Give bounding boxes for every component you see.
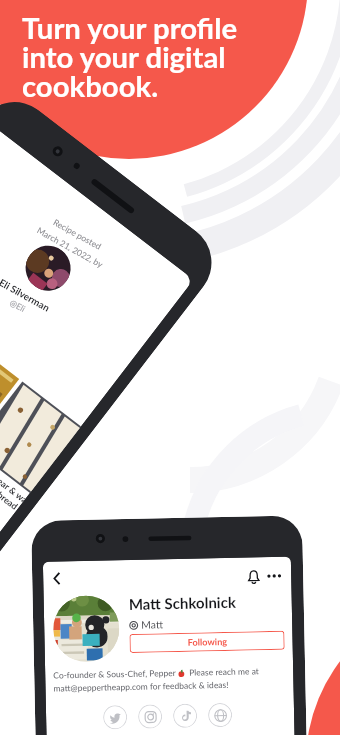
staticText: Co-founder & Sous-Chef, Pepper (53, 668, 178, 681)
staticText: Matt Schkolnick (129, 593, 237, 613)
staticText: Recipe posted March 21, 2022, by (0, 172, 152, 309)
button[interactable]: Following (129, 631, 285, 653)
button[interactable]: Instagram (138, 704, 162, 729)
button[interactable]: Website (208, 703, 232, 727)
button[interactable]: More options (262, 564, 286, 588)
staticText: Please reach me at (189, 666, 259, 678)
staticText: Turn your profile into your digital cook… (22, 10, 238, 103)
staticText: Matt (141, 618, 163, 632)
button[interactable]: Twitter (103, 705, 127, 729)
staticText: @Eli (0, 229, 108, 382)
staticText: matt@peppertheapp.com for feedback & ide… (53, 680, 230, 694)
staticText: Following (187, 636, 228, 648)
staticText: Eli Silverman (0, 218, 116, 372)
staticText: pear & walnut flatbread (0, 472, 28, 513)
button[interactable]: Notifications (241, 564, 265, 589)
button[interactable]: TikTok (173, 704, 197, 728)
button[interactable]: Back (45, 566, 69, 591)
